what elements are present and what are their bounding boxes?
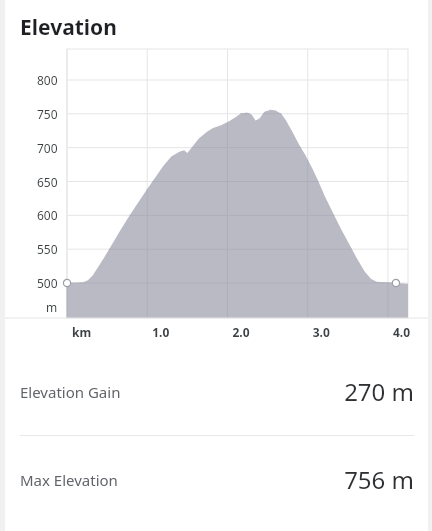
staticText: 270 m [344,375,414,408]
staticText: 756 m [344,463,414,496]
button[interactable]: Max Elevation [5,436,428,523]
staticText: Elevation Gain [20,382,121,402]
staticText: Max Elevation [20,470,118,490]
button[interactable]: Elevation Gain [5,348,428,435]
staticText: Elevation [20,13,117,42]
button[interactable]: Elevation profile chart [5,42,428,348]
